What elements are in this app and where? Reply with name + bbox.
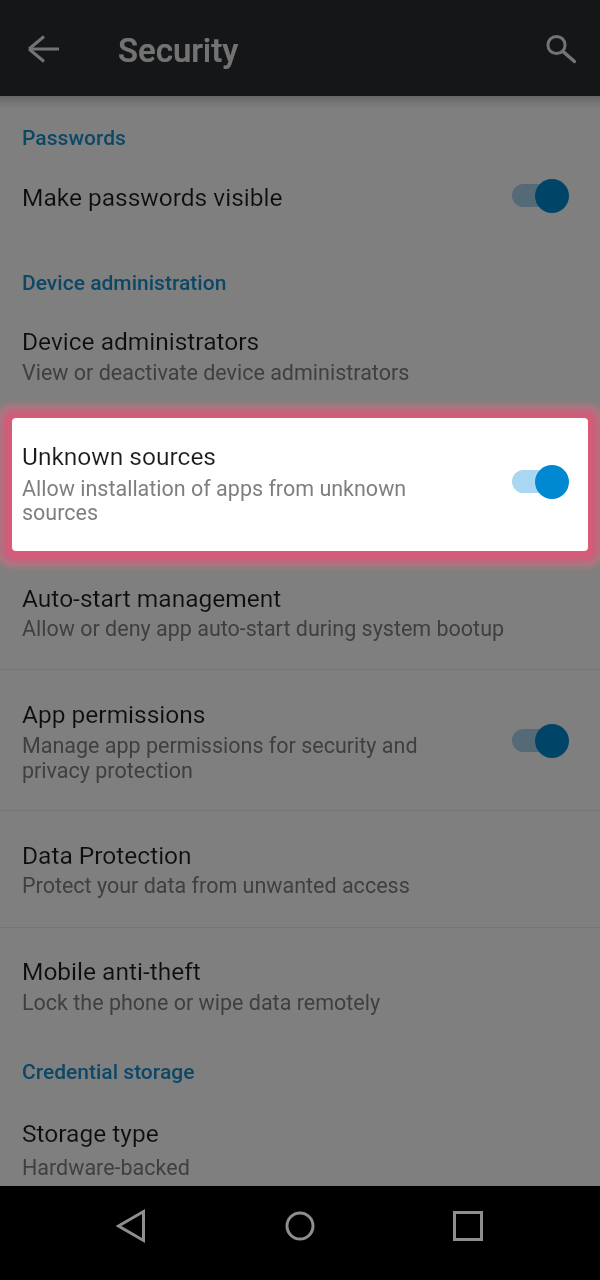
staticText: View or deactivate device administrators — [22, 360, 582, 385]
button[interactable] — [0, 810, 600, 927]
button[interactable]: Unknown sources — [12, 418, 588, 551]
button[interactable] — [0, 560, 600, 669]
button[interactable] — [0, 150, 600, 230]
staticText: Allow installation of apps from unknown … — [22, 476, 422, 526]
staticText: Unknown sources — [22, 442, 582, 471]
staticText: Passwords — [22, 126, 582, 151]
button[interactable] — [0, 670, 600, 809]
button[interactable]: Search — [527, 16, 587, 76]
staticText: Device administrators — [22, 327, 582, 356]
button[interactable]: Recent apps — [421, 1186, 515, 1280]
staticText: Manage app permissions for security and … — [22, 733, 442, 783]
staticText: Security — [118, 31, 239, 70]
button[interactable]: Home — [253, 1186, 347, 1280]
staticText: Protect your data from unwanted access — [22, 873, 582, 898]
staticText: Make passwords visible — [22, 183, 582, 212]
button[interactable] — [0, 300, 600, 396]
button[interactable]: Back — [13, 18, 73, 78]
staticText: Hardware-backed — [22, 1155, 582, 1180]
button[interactable] — [0, 410, 600, 560]
staticText: Mobile anti-theft — [22, 957, 582, 986]
button[interactable] — [0, 928, 600, 1038]
staticText: Storage type — [22, 1119, 582, 1148]
staticText: Data Protection — [22, 841, 582, 870]
staticText: Allow installation of apps from unknown … — [22, 476, 422, 525]
button[interactable]: Back — [84, 1186, 178, 1280]
staticText: App permissions — [22, 700, 582, 729]
staticText: Auto-start management — [22, 584, 582, 613]
staticText: Lock the phone or wipe data remotely — [22, 990, 582, 1015]
staticText: Allow or deny app auto-start during syst… — [22, 616, 582, 641]
staticText: Unknown sources — [22, 442, 217, 471]
staticText: Device administration — [22, 271, 582, 296]
button[interactable] — [0, 1090, 600, 1186]
staticText: Credential storage — [22, 1060, 582, 1085]
